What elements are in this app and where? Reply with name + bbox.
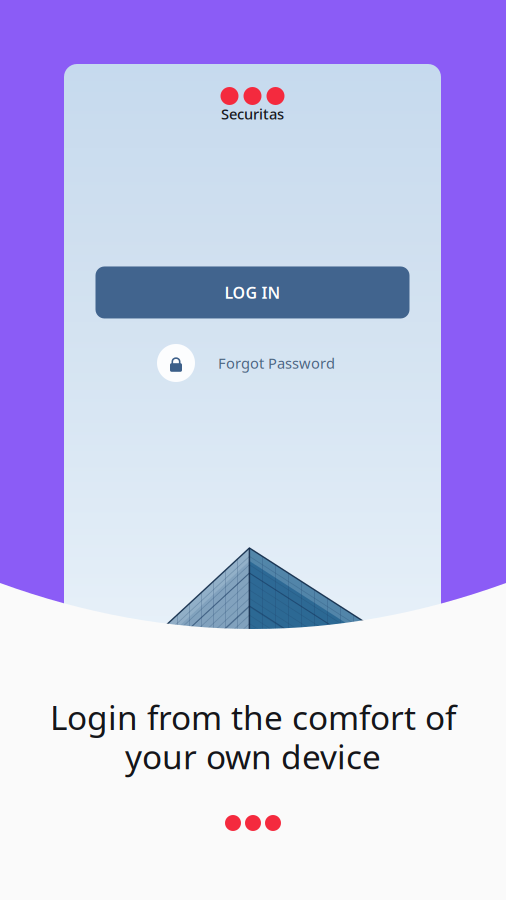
button[interactable]: Forgot Password bbox=[157, 344, 335, 382]
staticText: Securitas bbox=[221, 104, 284, 123]
staticText: LOG IN bbox=[224, 282, 280, 303]
button[interactable]: LOG IN bbox=[95, 266, 409, 318]
staticText: your own device bbox=[125, 734, 381, 779]
staticText: Login from the comfort of bbox=[50, 695, 456, 739]
staticText: Forgot Password bbox=[218, 353, 335, 373]
